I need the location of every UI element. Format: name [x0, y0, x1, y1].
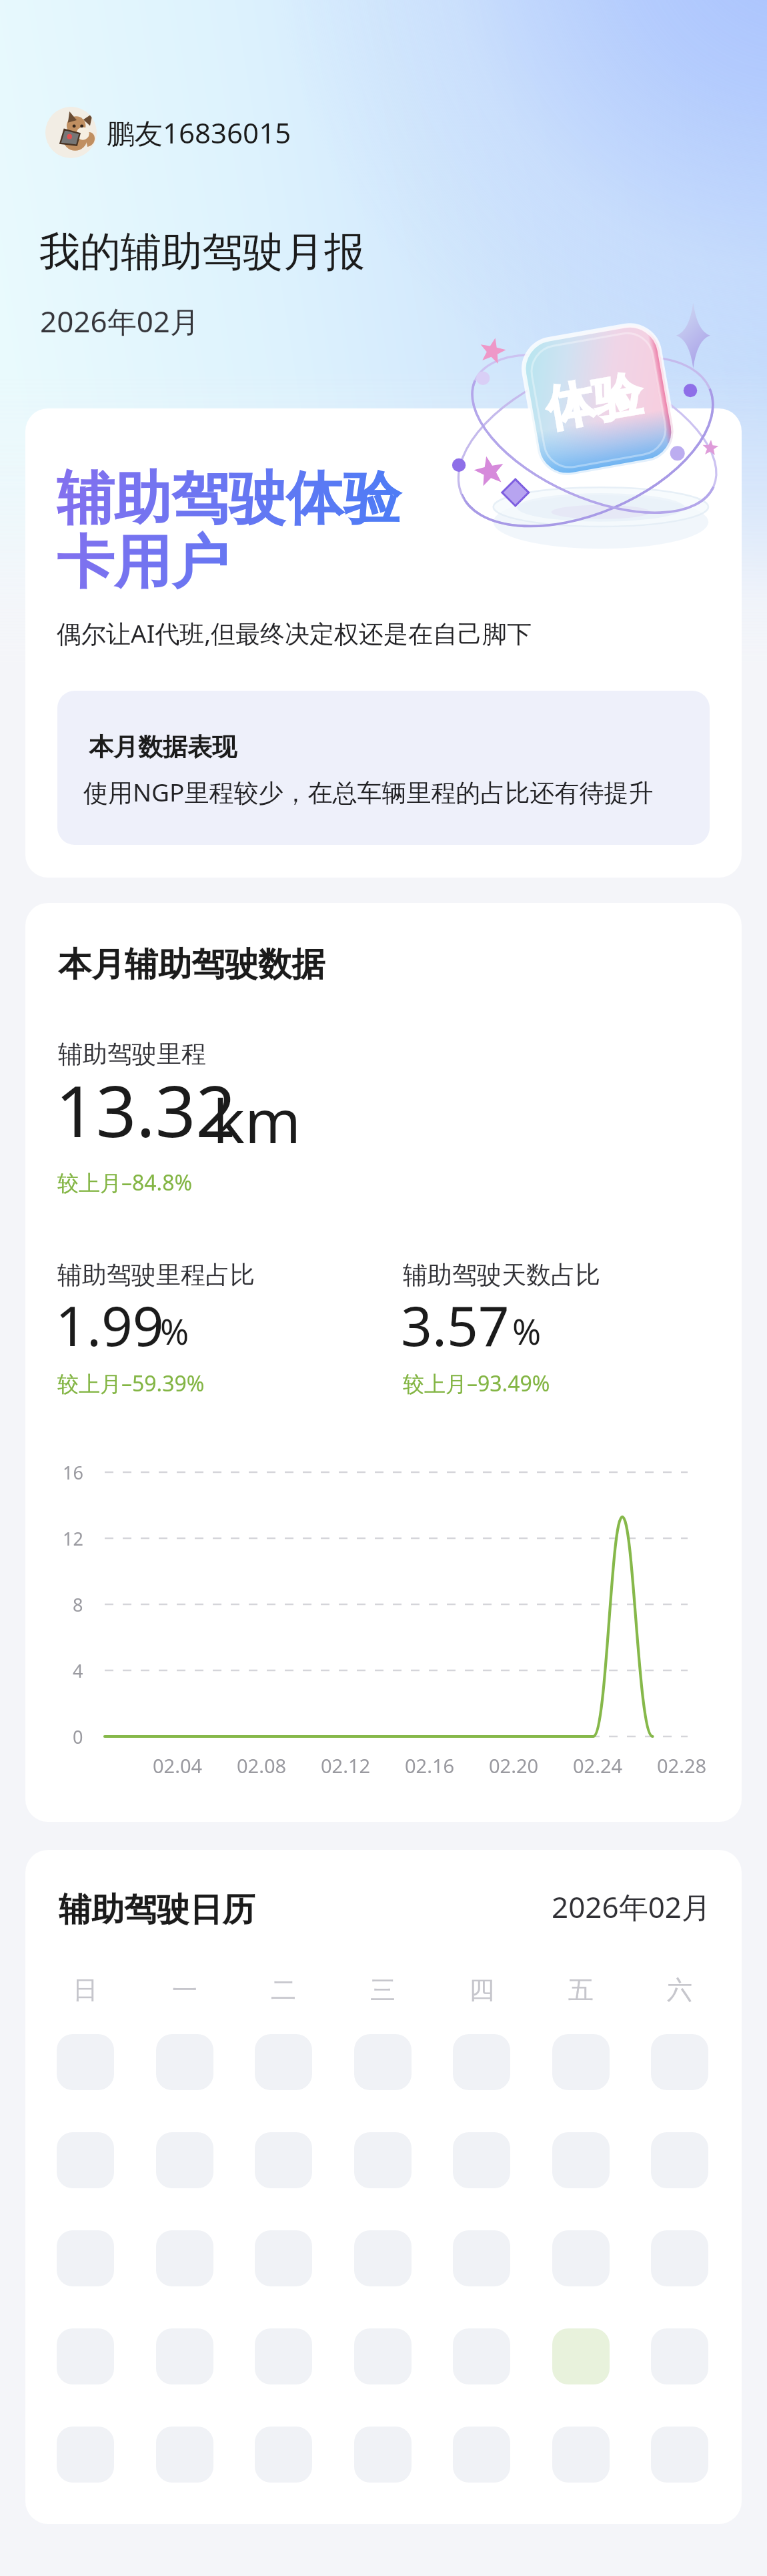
staticText: 02.08 [237, 1752, 287, 1779]
staticText: 日 [73, 1974, 98, 2006]
staticText: 鹏友16836015 [107, 113, 291, 151]
staticText: 五 [568, 1974, 594, 2006]
button[interactable] [156, 2034, 213, 2090]
staticText: 一 [172, 1974, 197, 2006]
staticText: 辅助驾驶里程占比 [57, 1259, 255, 1291]
staticText: 02.28 [657, 1752, 707, 1779]
button[interactable] [453, 2427, 510, 2483]
staticText: 02.24 [573, 1752, 623, 1779]
staticText: 三 [370, 1974, 396, 2006]
staticText: % [160, 1307, 189, 1355]
staticText: 8 [73, 1592, 83, 1617]
staticText: 使用NGP里程较少，在总车辆里程的占比还有待提升 [83, 775, 654, 809]
staticText: 较上月–84.8% [57, 1168, 193, 1197]
staticText: 0 [73, 1724, 83, 1749]
button[interactable] [156, 2132, 213, 2188]
staticText: 较上月–93.49% [403, 1369, 550, 1398]
button[interactable] [552, 2132, 610, 2188]
button[interactable] [453, 2132, 510, 2188]
button[interactable] [453, 2230, 510, 2286]
staticText: 四 [469, 1974, 494, 2006]
staticText: 辅助驾驶里程 [58, 1038, 206, 1070]
button[interactable] [255, 2034, 312, 2090]
staticText: 辅助驾驶体验 卡用户 [57, 462, 401, 599]
staticText: 辅助驾驶天数占比 [403, 1259, 600, 1291]
button[interactable] [354, 2132, 412, 2188]
button[interactable] [57, 2328, 114, 2384]
staticText: 16 [63, 1460, 83, 1485]
button[interactable] [354, 2034, 412, 2090]
staticText: 我的辅助驾驶月报 [39, 226, 365, 278]
button[interactable] [57, 2427, 114, 2483]
button[interactable] [255, 2230, 312, 2286]
staticText: 02.16 [405, 1752, 455, 1779]
staticText: 3.57 [401, 1287, 510, 1362]
staticText: 1.99 [55, 1287, 164, 1362]
button[interactable]: Profile avatar [45, 107, 97, 158]
button[interactable] [552, 2230, 610, 2286]
button[interactable] [255, 2427, 312, 2483]
button[interactable] [354, 2230, 412, 2286]
staticText: 本月辅助驾驶数据 [58, 944, 325, 986]
button[interactable] [57, 2230, 114, 2286]
button[interactable] [651, 2427, 708, 2483]
button[interactable] [552, 2427, 610, 2483]
button[interactable] [651, 2034, 708, 2090]
staticText: 六 [667, 1974, 692, 2006]
button[interactable] [255, 2132, 312, 2188]
staticText: 体验 [542, 364, 647, 440]
button[interactable] [156, 2230, 213, 2286]
button[interactable] [453, 2328, 510, 2384]
staticText: 2026年02月 [552, 1887, 712, 1927]
staticText: 13.32 [55, 1062, 236, 1158]
staticText: 4 [73, 1658, 83, 1683]
staticText: 本月数据表现 [89, 731, 237, 763]
staticText: 02.20 [489, 1752, 539, 1779]
staticText: 偶尔让AI代班,但最终决定权还是在自己脚下 [57, 616, 532, 650]
button[interactable] [651, 2132, 708, 2188]
button[interactable] [156, 2328, 213, 2384]
staticText: % [512, 1307, 542, 1355]
staticText: 较上月–59.39% [57, 1369, 205, 1398]
button[interactable] [651, 2230, 708, 2286]
button[interactable] [552, 2328, 610, 2384]
button[interactable] [255, 2328, 312, 2384]
button[interactable] [453, 2034, 510, 2090]
staticText: 02.04 [153, 1752, 203, 1779]
staticText: 02.12 [321, 1752, 371, 1779]
button[interactable] [57, 2034, 114, 2090]
button[interactable] [354, 2328, 412, 2384]
staticText: 辅助驾驶日历 [59, 1889, 255, 1931]
button[interactable] [354, 2427, 412, 2483]
button[interactable] [156, 2427, 213, 2483]
button[interactable] [552, 2034, 610, 2090]
button[interactable] [651, 2328, 708, 2384]
staticText: 二 [271, 1974, 296, 2006]
button[interactable] [57, 2132, 114, 2188]
staticText: 12 [63, 1526, 83, 1551]
staticText: km [213, 1079, 301, 1161]
staticText: 2026年02月 [40, 301, 200, 341]
